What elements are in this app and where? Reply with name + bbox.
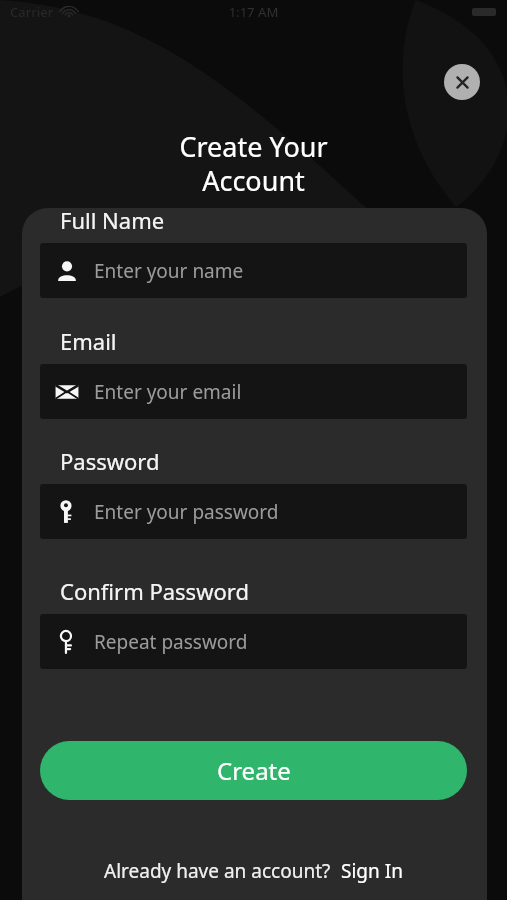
- staticText: 1:17 AM: [0, 3, 507, 21]
- staticText: Repeat password: [94, 629, 248, 655]
- staticText: Enter your name: [94, 258, 244, 284]
- staticText: Enter your password: [94, 499, 279, 525]
- button[interactable]: Close: [444, 64, 480, 100]
- button[interactable]: Repeat password: [40, 614, 467, 669]
- staticText: Already have an account?: [104, 858, 331, 884]
- staticText: Sign In: [341, 858, 403, 884]
- staticText: Password: [60, 446, 160, 476]
- staticText: Create: [217, 754, 291, 787]
- button[interactable]: Enter your password: [40, 484, 467, 539]
- button[interactable]: Create: [40, 741, 467, 800]
- staticText: Carrier: [10, 3, 54, 21]
- staticText: Enter your email: [94, 379, 242, 405]
- button[interactable]: Sign In: [341, 858, 403, 884]
- button[interactable]: Enter your name: [40, 243, 467, 298]
- staticText: Full Name: [60, 205, 165, 235]
- staticText: Create Your Account: [0, 128, 507, 199]
- staticText: Email: [60, 326, 117, 356]
- staticText: Confirm Password: [60, 576, 249, 606]
- button[interactable]: Enter your email: [40, 364, 467, 419]
